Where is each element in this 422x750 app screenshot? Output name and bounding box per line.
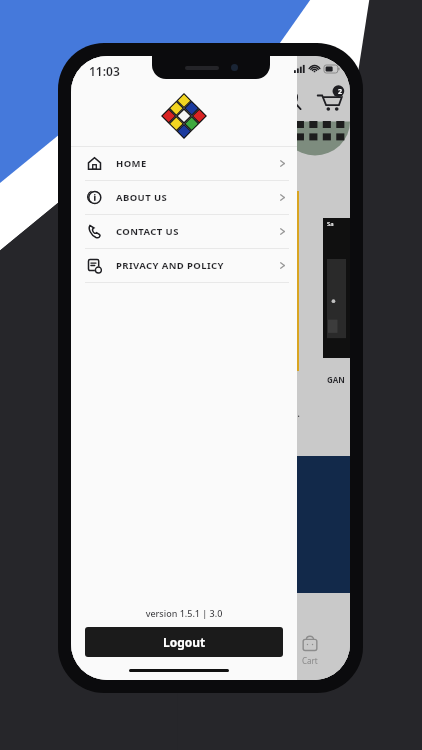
staticText: ABOUT US [116, 191, 168, 204]
button[interactable]: ABOUT US [71, 181, 297, 215]
button[interactable]: Search [280, 88, 304, 112]
staticText: HOME [116, 157, 147, 170]
button[interactable]: Cart [270, 620, 350, 680]
button[interactable]: Cart [316, 86, 344, 114]
staticText: PRIVACY AND POLICY [116, 259, 224, 272]
staticText: 11:03 [89, 63, 120, 79]
staticText: 2 [338, 87, 343, 97]
staticText: Logout [163, 634, 206, 650]
button[interactable]: CONTACT US [71, 215, 297, 249]
button[interactable]: HOME [71, 147, 297, 181]
button[interactable]: PRIVACY AND POLICY [71, 249, 297, 283]
button[interactable]: Logout [85, 627, 283, 657]
staticText: Sa [327, 220, 334, 228]
staticText: GAN [327, 374, 345, 385]
staticText: version 1.5.1 | 3.0 [71, 607, 297, 619]
staticText: ... [293, 408, 300, 419]
staticText: CONTACT US [116, 225, 179, 238]
staticText: Cart [302, 655, 318, 666]
